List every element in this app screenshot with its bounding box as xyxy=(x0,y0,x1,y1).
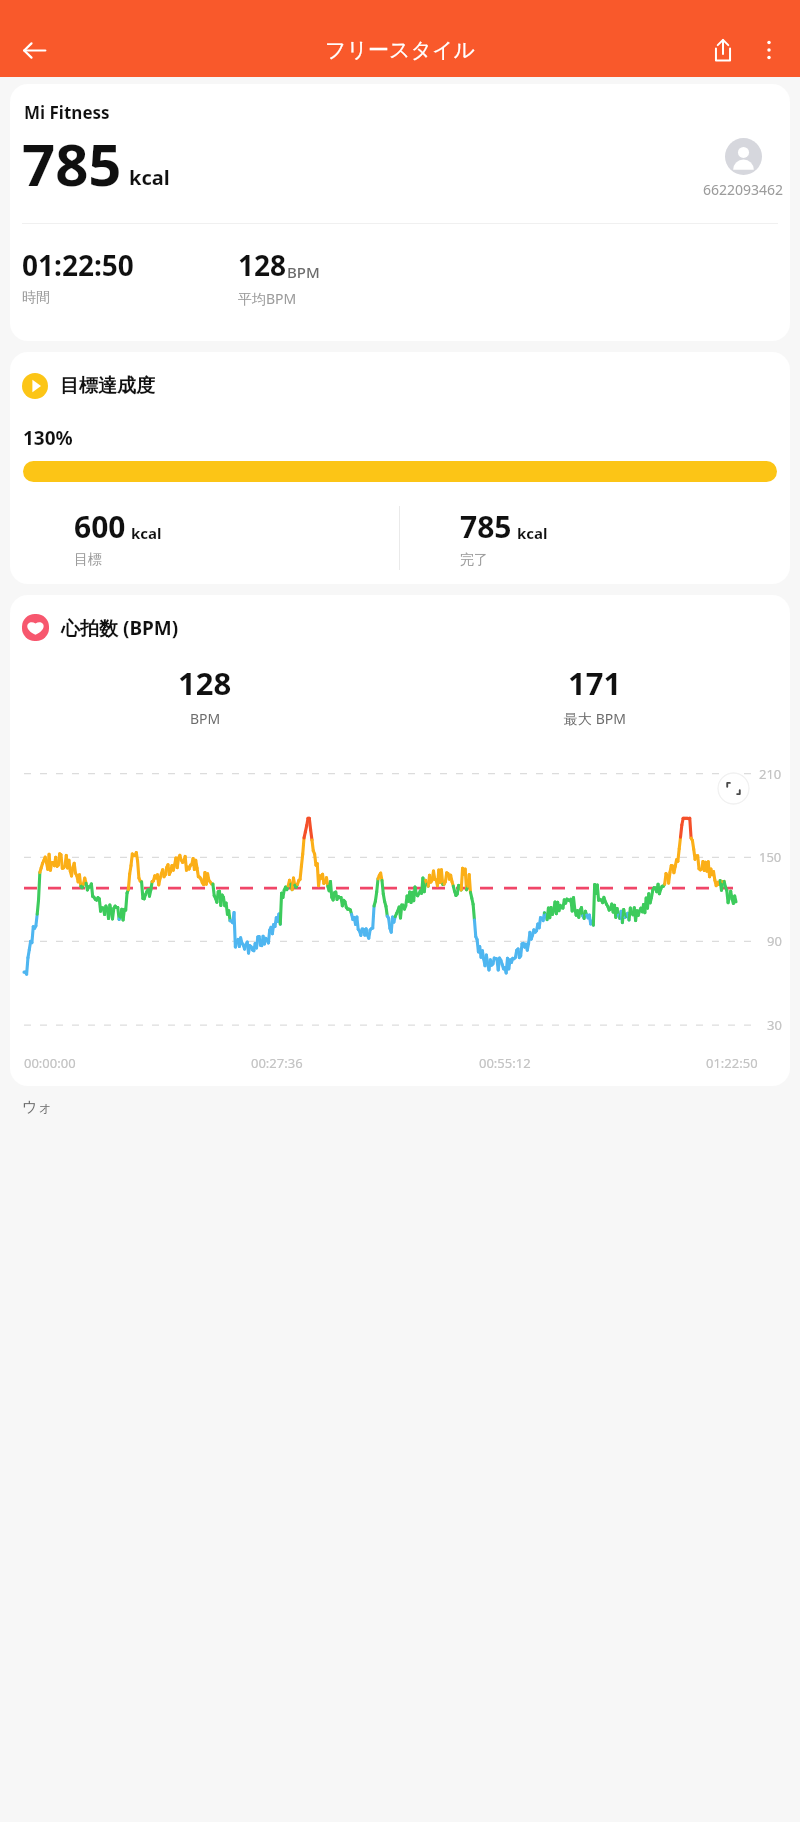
staticText: 171 xyxy=(568,662,622,704)
staticText: 01:22:50 xyxy=(706,1054,758,1072)
button[interactable]: Expand chart xyxy=(717,772,750,805)
staticText: 90 xyxy=(767,932,782,950)
staticText: 目標達成度 xyxy=(60,374,155,398)
staticText: 6622093462 xyxy=(703,180,784,199)
staticText: 平均BPM xyxy=(238,289,297,308)
staticText: 128 xyxy=(178,662,232,704)
staticText: 目標 xyxy=(74,551,102,569)
staticText: フリースタイル xyxy=(325,37,475,63)
button[interactable]: Share xyxy=(700,27,746,73)
staticText: 785 xyxy=(22,124,122,200)
staticText: kcal xyxy=(129,164,170,191)
button[interactable]: 目標達成度 xyxy=(10,352,790,584)
button[interactable]: More options xyxy=(746,27,792,73)
staticText: 600 xyxy=(74,506,126,547)
staticText: 128 xyxy=(238,246,287,284)
staticText: 150 xyxy=(759,848,782,866)
staticText: BPM xyxy=(190,709,221,728)
staticText: 210 xyxy=(759,765,782,783)
staticText: ウォ xyxy=(22,1098,53,1117)
staticText: 最大 BPM xyxy=(564,709,626,728)
staticText: BPM xyxy=(287,262,320,282)
button[interactable]: Back xyxy=(12,28,56,72)
staticText: 00:55:12 xyxy=(479,1054,531,1072)
staticText: 完了 xyxy=(460,551,488,569)
staticText: kcal xyxy=(517,523,548,543)
staticText: 30 xyxy=(767,1016,782,1034)
staticText: 130% xyxy=(23,425,73,451)
staticText: 785 xyxy=(460,506,512,547)
button[interactable]: Mi Fitness xyxy=(10,84,790,341)
staticText: 時間 xyxy=(22,289,50,307)
staticText: kcal xyxy=(131,523,162,543)
staticText: 00:27:36 xyxy=(251,1054,303,1072)
staticText: Mi Fitness xyxy=(24,101,110,124)
button[interactable]: 心拍数 (BPM) xyxy=(10,595,790,1086)
staticText: 心拍数 (BPM) xyxy=(61,615,179,641)
staticText: 01:22:50 xyxy=(22,246,134,284)
staticText: 00:00:00 xyxy=(24,1054,76,1072)
